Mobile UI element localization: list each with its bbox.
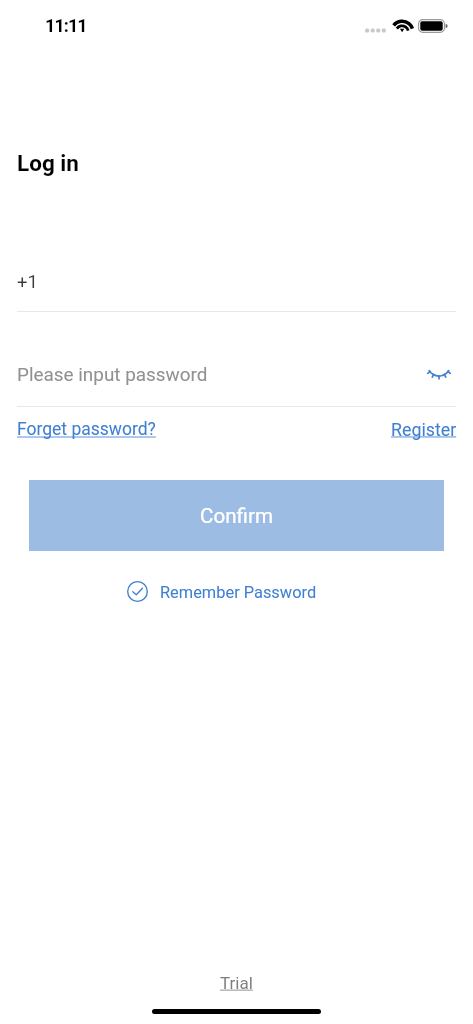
- button[interactable]: Trial: [220, 973, 253, 993]
- staticText: Confirm: [200, 504, 273, 528]
- button[interactable]: Register: [391, 419, 457, 440]
- button[interactable]: Remember Password: [127, 581, 317, 602]
- staticText: Remember Password: [160, 583, 317, 602]
- staticText: Trial: [220, 973, 253, 993]
- button[interactable]: +1: [0, 263, 473, 311]
- button[interactable]: Show password: [422, 358, 456, 392]
- staticText: Log in: [17, 150, 79, 176]
- staticText: 11:11: [45, 15, 87, 36]
- staticText: Please input password: [17, 363, 208, 385]
- staticText: +1: [17, 271, 38, 293]
- staticText: Forget password?: [17, 419, 156, 440]
- button[interactable]: Forget password?: [17, 419, 156, 440]
- staticText: Register: [391, 419, 457, 440]
- button[interactable]: Confirm: [29, 480, 444, 551]
